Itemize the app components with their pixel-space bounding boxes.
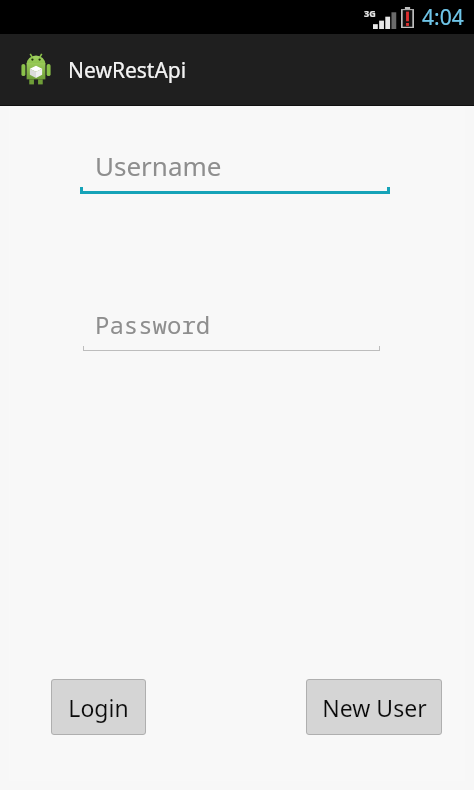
button[interactable]: Username xyxy=(0,143,474,194)
staticText: New User xyxy=(322,692,427,723)
staticText: NewRestApi xyxy=(68,56,187,85)
staticText: 4:04 xyxy=(422,3,464,32)
staticText: Username xyxy=(95,148,222,183)
staticText: Login xyxy=(68,692,129,723)
button[interactable]: New User xyxy=(306,679,442,735)
button[interactable]: Login xyxy=(51,679,146,735)
button[interactable]: Password xyxy=(0,302,474,351)
staticText: Password xyxy=(95,308,211,341)
staticText: 3G xyxy=(364,7,376,19)
